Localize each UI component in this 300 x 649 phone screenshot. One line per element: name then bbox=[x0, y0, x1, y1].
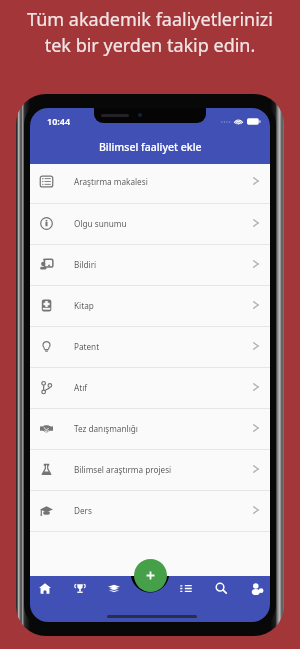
button[interactable]: Awards bbox=[65, 576, 95, 622]
staticText: Bildiri bbox=[74, 259, 97, 270]
button[interactable]: Olgu sunumu bbox=[30, 204, 270, 245]
button[interactable]: Add bbox=[134, 559, 167, 592]
button[interactable]: Araştırma makalesi bbox=[30, 164, 270, 204]
staticText: Kitap bbox=[74, 300, 94, 311]
button[interactable]: Tez danışmanlığı bbox=[30, 409, 270, 450]
staticText: Bilimsel araştırma projesi bbox=[74, 464, 172, 475]
button[interactable]: Home bbox=[30, 576, 60, 622]
button[interactable]: Library bbox=[99, 576, 129, 622]
button[interactable]: Search bbox=[206, 576, 236, 622]
staticText: Olgu sunumu bbox=[74, 218, 127, 229]
button[interactable]: Ders bbox=[30, 491, 270, 532]
button[interactable]: Profile bbox=[242, 576, 270, 622]
staticText: Tez danışmanlığı bbox=[74, 423, 138, 434]
button[interactable]: Bilimsel araştırma projesi bbox=[30, 450, 270, 491]
button[interactable]: Bildiri bbox=[30, 245, 270, 286]
staticText: Atıf bbox=[74, 382, 88, 393]
staticText: Araştırma makalesi bbox=[74, 176, 148, 187]
button[interactable]: Atıf bbox=[30, 368, 270, 409]
button[interactable]: Activities bbox=[171, 576, 201, 622]
staticText: Patent bbox=[74, 341, 100, 352]
staticText: Bilimsel faaliyet ekle bbox=[99, 140, 202, 154]
button[interactable]: Patent bbox=[30, 327, 270, 368]
staticText: Tüm akademik faaliyetlerinizi tek bir ye… bbox=[0, 7, 300, 57]
button[interactable]: Kitap bbox=[30, 286, 270, 327]
staticText: 10:44 bbox=[47, 115, 71, 127]
staticText: Ders bbox=[74, 505, 92, 516]
button[interactable]: Bilimsel faaliyet ekle bbox=[30, 129, 270, 164]
